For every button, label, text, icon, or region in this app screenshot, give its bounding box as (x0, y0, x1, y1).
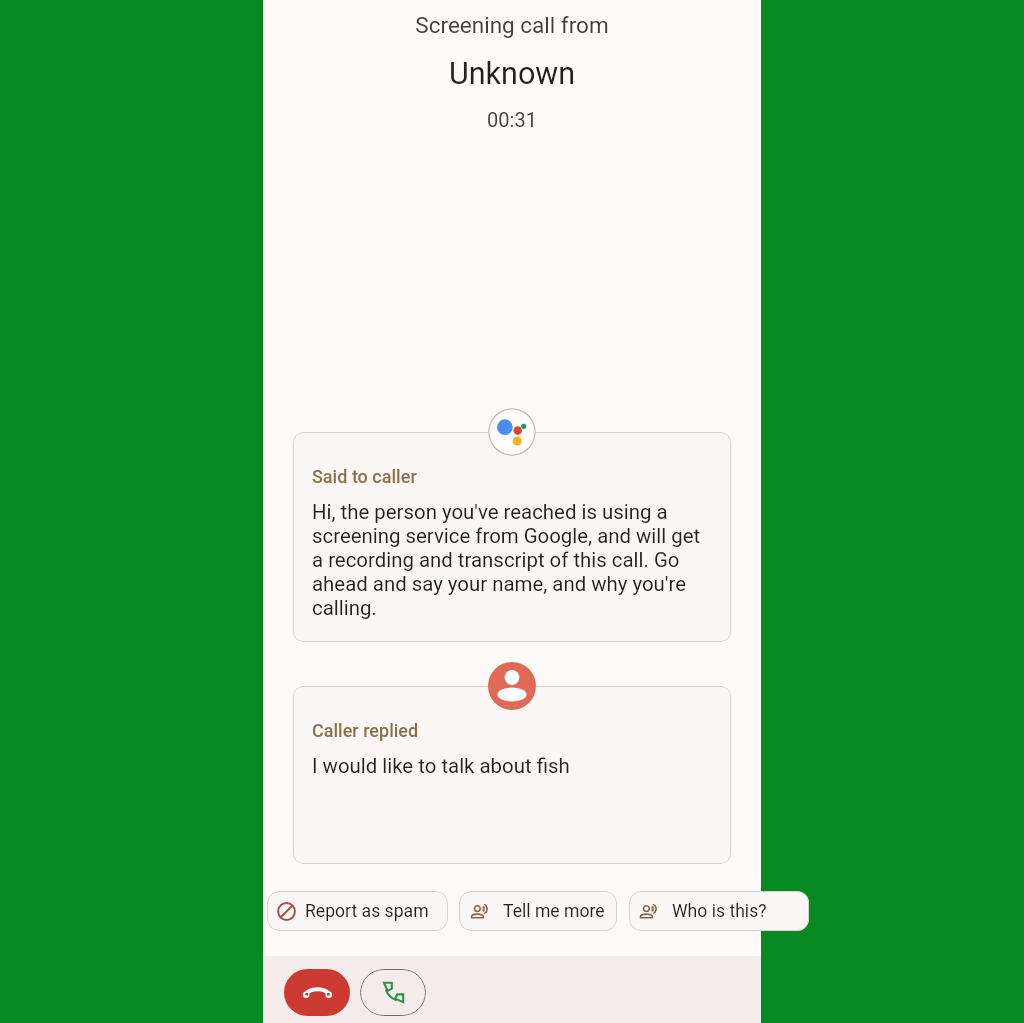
button[interactable]: Caller replied (293, 686, 731, 864)
button[interactable]: Tell me more (459, 891, 617, 931)
staticText: Screening call from (263, 12, 761, 38)
staticText: Said to caller (312, 466, 417, 487)
button[interactable]: Report as spam (267, 891, 448, 931)
staticText: I would like to talk about fish (312, 754, 570, 778)
staticText: Caller replied (312, 720, 419, 741)
staticText: Unknown (263, 56, 761, 92)
staticText: Report as spam (305, 901, 429, 922)
button[interactable]: Who is this? (629, 891, 809, 931)
button[interactable]: Said to caller (293, 432, 731, 642)
staticText: 00:31 (263, 108, 761, 131)
staticText: Tell me more (503, 901, 605, 922)
staticText: Who is this? (672, 901, 767, 922)
button[interactable]: Answer call (360, 969, 426, 1016)
staticText: Hi, the person you've reached is using a… (312, 500, 702, 620)
button[interactable]: End call (284, 969, 350, 1016)
